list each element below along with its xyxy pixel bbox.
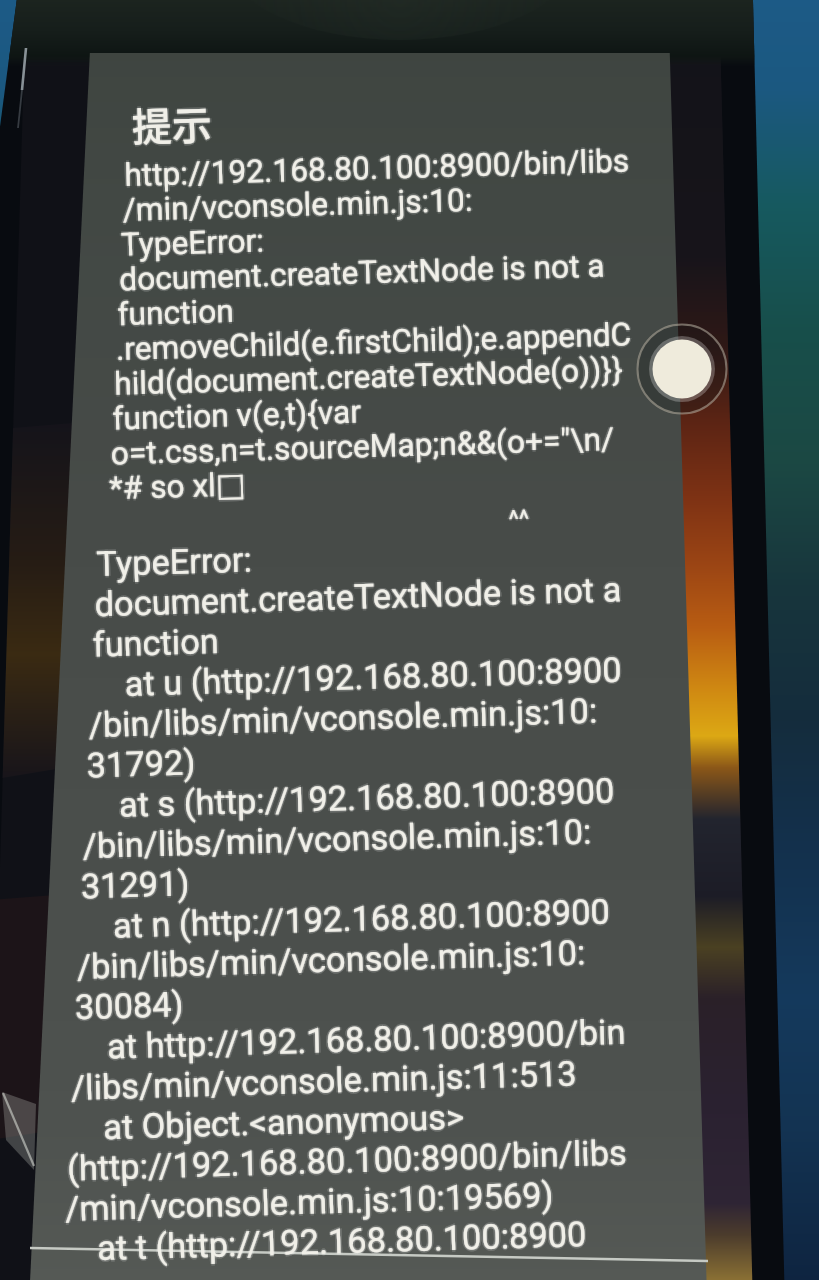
button[interactable]: Alert dialog bbox=[0, 0, 819, 1280]
